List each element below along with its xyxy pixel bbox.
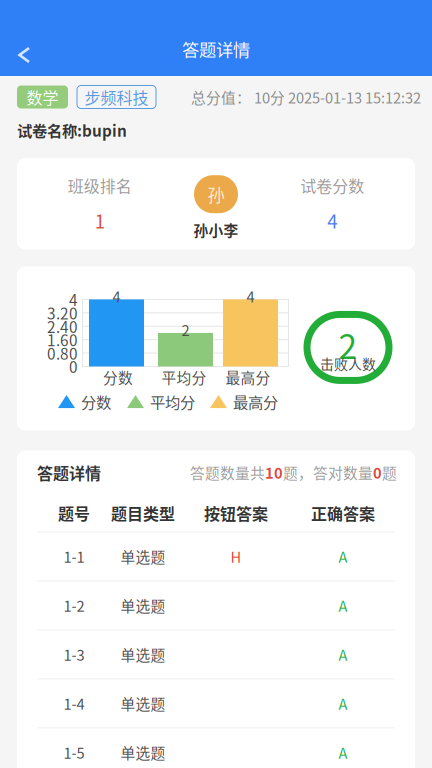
staticText: 1-1 bbox=[63, 546, 84, 567]
staticText: 0.80 bbox=[47, 342, 78, 364]
staticText: 试卷名称:bupin bbox=[17, 119, 127, 141]
staticText: 题， bbox=[283, 462, 313, 483]
staticText: 4 bbox=[69, 288, 78, 310]
staticText: H bbox=[230, 546, 241, 567]
staticText: A bbox=[338, 742, 347, 763]
staticText: A bbox=[338, 546, 347, 567]
staticText: A bbox=[338, 693, 347, 714]
staticText: 单选题 bbox=[120, 693, 165, 714]
staticText: 1-2 bbox=[63, 595, 84, 616]
staticText: 题号 bbox=[58, 501, 90, 525]
staticText: 1-5 bbox=[63, 742, 84, 763]
staticText: 分数 bbox=[81, 390, 111, 413]
staticText: 单选题 bbox=[120, 595, 165, 616]
staticText: 10 bbox=[265, 462, 283, 483]
staticText: 4 bbox=[112, 285, 120, 307]
staticText: 4 bbox=[246, 285, 254, 307]
staticText: 题 bbox=[382, 462, 397, 483]
staticText: 3.20 bbox=[47, 302, 78, 324]
staticText: 单选题 bbox=[120, 546, 165, 567]
staticText: 单选题 bbox=[120, 644, 165, 665]
staticText: 班级排名 bbox=[68, 174, 132, 197]
staticText: 4 bbox=[327, 207, 337, 234]
staticText: 正确答案 bbox=[311, 501, 375, 525]
staticText: 按钮答案 bbox=[204, 501, 268, 525]
staticText: 题目类型 bbox=[111, 501, 175, 525]
button[interactable]: Back bbox=[0, 0, 52, 76]
staticText: 2.40 bbox=[47, 315, 78, 337]
staticText: 答题详情 bbox=[182, 36, 250, 62]
staticText: 2 bbox=[338, 320, 357, 369]
staticText: 平均分 bbox=[161, 366, 206, 388]
staticText: 1-3 bbox=[63, 644, 84, 665]
staticText: 数学 bbox=[26, 85, 58, 109]
staticText: 0 bbox=[373, 462, 382, 483]
staticText: 试卷分数 bbox=[300, 174, 364, 197]
staticText: A bbox=[338, 595, 347, 616]
staticText: 答对数量 bbox=[313, 462, 373, 483]
staticText: 答题详情 bbox=[37, 461, 101, 484]
staticText: 1.60 bbox=[47, 328, 78, 351]
staticText: 平均分 bbox=[150, 390, 195, 413]
staticText: 2 bbox=[181, 319, 189, 340]
staticText: 总分值： 10分 2025-01-13 15:12:32 bbox=[191, 86, 421, 108]
staticText: 单选题 bbox=[120, 742, 165, 763]
staticText: 1 bbox=[95, 207, 105, 234]
staticText: 孙 bbox=[207, 182, 224, 207]
staticText: 分数 bbox=[103, 366, 133, 388]
staticText: 最高分 bbox=[233, 390, 278, 413]
staticText: 孙小李 bbox=[193, 219, 238, 240]
staticText: 击败人数 bbox=[320, 353, 376, 374]
staticText: 1-4 bbox=[63, 693, 84, 714]
staticText: A bbox=[338, 644, 347, 665]
staticText: 最高分 bbox=[225, 366, 270, 388]
staticText: 步频科技 bbox=[84, 85, 148, 109]
staticText: 答题数量共 bbox=[190, 462, 265, 483]
staticText: 0 bbox=[69, 355, 78, 377]
